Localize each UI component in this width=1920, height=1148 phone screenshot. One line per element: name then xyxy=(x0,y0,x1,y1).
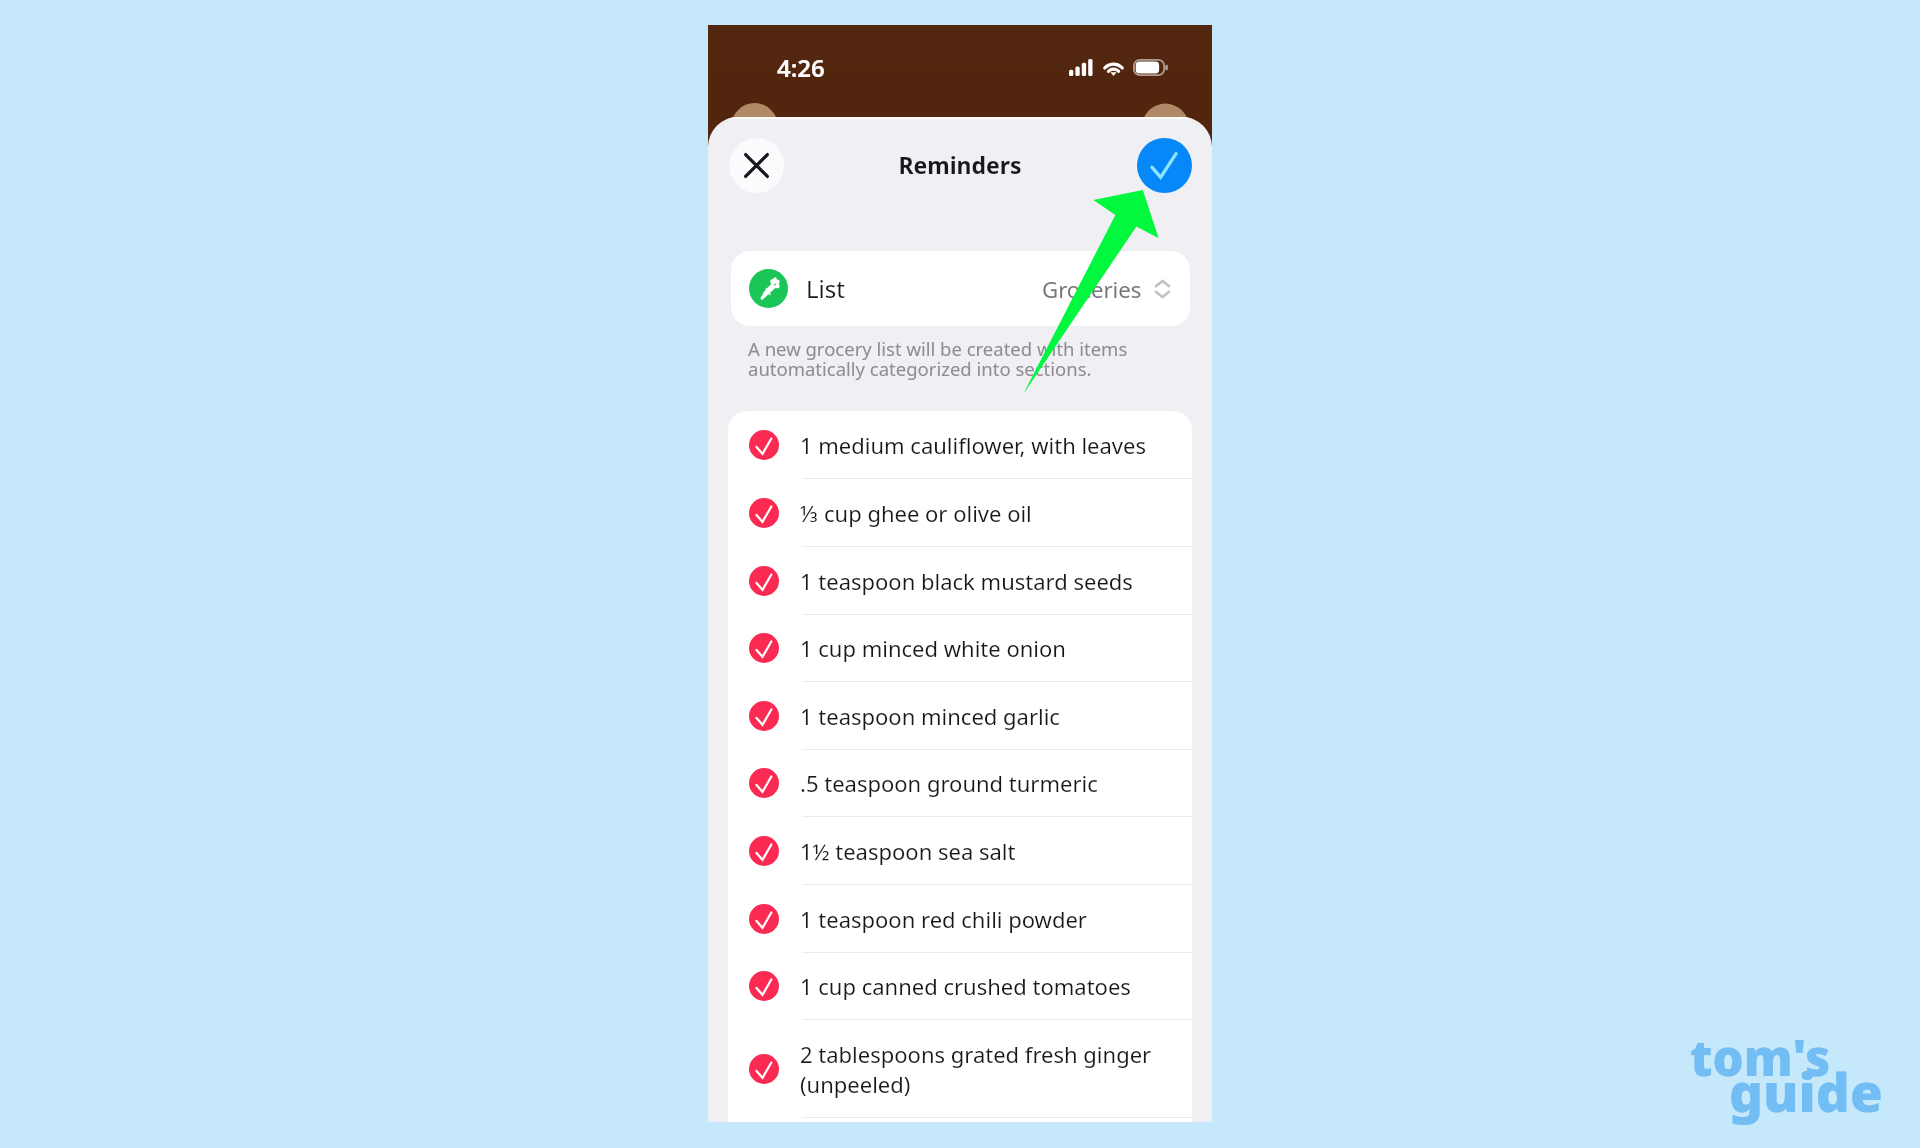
staticText: 1 teaspoon red chili powder xyxy=(800,904,1087,934)
button[interactable]: ⅓ cup ghee or olive oil xyxy=(728,479,1192,547)
staticText: 1 teaspoon black mustard seeds xyxy=(800,566,1133,596)
staticText: ⅓ cup ghee or olive oil xyxy=(800,498,1032,528)
button[interactable]: 1 medium cauliflower, with leaves xyxy=(728,411,1192,479)
button[interactable]: 2 tablespoons grated fresh ginger (unpee… xyxy=(728,1020,1192,1118)
button[interactable]: 1 teaspoon red chili powder xyxy=(728,885,1192,953)
staticText: 1 cup minced white onion xyxy=(800,633,1066,663)
staticText: Groceries xyxy=(1042,274,1142,304)
button[interactable]: .5 teaspoon ground turmeric xyxy=(728,749,1192,817)
staticText: 2 tablespoons grated fresh ginger (unpee… xyxy=(800,1039,1152,1099)
button[interactable]: 1½ teaspoon sea salt xyxy=(728,817,1192,885)
staticText: tom's xyxy=(1690,1024,1831,1091)
button[interactable]: List xyxy=(731,251,1190,326)
button[interactable]: 1 teaspoon minced garlic xyxy=(728,682,1192,750)
button[interactable]: 1 cup minced white onion xyxy=(728,614,1192,682)
button[interactable]: 1 teaspoon black mustard seeds xyxy=(728,547,1192,615)
button[interactable]: 1 cup canned crushed tomatoes xyxy=(728,952,1192,1020)
staticText: 1½ teaspoon sea salt xyxy=(800,836,1016,866)
staticText: List xyxy=(806,272,845,305)
staticText: Reminders xyxy=(708,149,1212,180)
staticText: A new grocery list will be created with … xyxy=(748,336,1128,382)
staticText: 1 cup canned crushed tomatoes xyxy=(800,971,1131,1001)
staticText: guide xyxy=(1729,1055,1883,1127)
staticText: 1 medium cauliflower, with leaves xyxy=(800,430,1146,460)
button[interactable]: Close xyxy=(729,138,784,193)
button[interactable]: Done xyxy=(1137,138,1192,193)
staticText: 4:26 xyxy=(777,51,825,84)
staticText: 1 teaspoon minced garlic xyxy=(800,701,1060,731)
staticText: .5 teaspoon ground turmeric xyxy=(800,768,1098,798)
